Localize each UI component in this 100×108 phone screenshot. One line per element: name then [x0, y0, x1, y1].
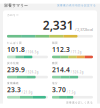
staticText: 栄養素の表示項目を設定する — [57, 4, 96, 7]
staticText: 塩分 — [52, 82, 58, 85]
staticText: / 21.0g — [22, 91, 33, 94]
staticText: 112.3 — [52, 45, 70, 54]
staticText: 栄養素を詳しく見る — [66, 101, 93, 104]
staticText: / 7.5g — [67, 91, 76, 94]
staticText: 食物繊維 — [7, 82, 19, 85]
staticText: 栄養サマリー — [4, 3, 28, 8]
button[interactable]: 栄養素を詳しく見る — [66, 101, 93, 104]
staticText: 脂質 — [52, 41, 58, 45]
staticText: 2,331 — [43, 17, 74, 33]
staticText: / 326.2g — [26, 70, 39, 74]
staticText: / 106.5g — [26, 50, 39, 54]
staticText: 214.4 — [52, 65, 70, 74]
staticText: たんぱく質 — [7, 41, 22, 45]
staticText: 炭水化物 — [7, 61, 19, 65]
staticText: カロリー — [7, 13, 19, 17]
staticText: / 2,372kcal — [75, 27, 93, 32]
staticText: 101.8 — [7, 45, 25, 54]
staticText: / 326.2g — [71, 70, 84, 74]
staticText: 23.3 — [7, 85, 21, 94]
staticText: 239.9 — [7, 65, 25, 74]
button[interactable]: 栄養素の表示項目を設定する — [57, 4, 96, 7]
staticText: / 71.2g — [71, 50, 82, 54]
staticText: 糖質 — [52, 61, 58, 65]
staticText: 3.70 — [52, 85, 66, 94]
